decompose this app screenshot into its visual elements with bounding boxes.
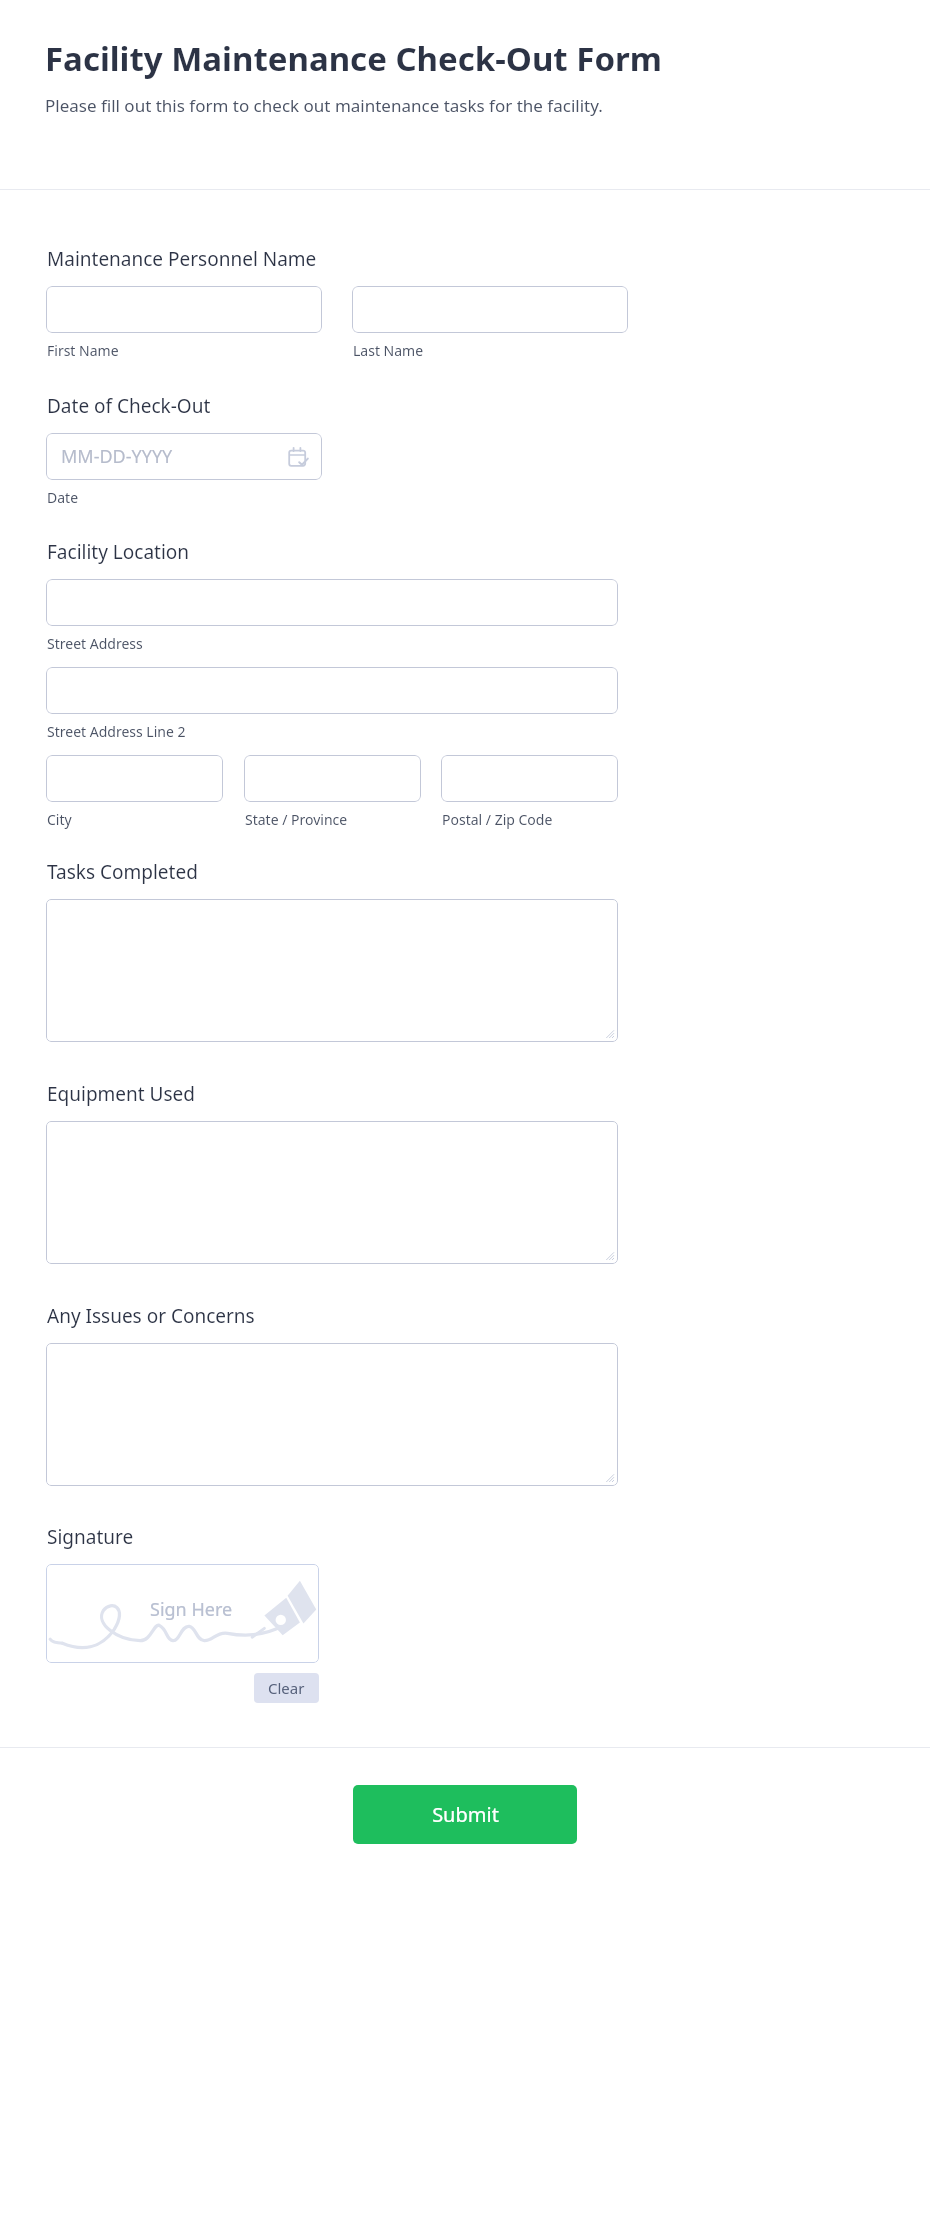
button[interactable] — [46, 286, 322, 333]
staticText: Please fill out this form to check out m… — [45, 94, 603, 117]
button[interactable] — [352, 286, 628, 333]
button[interactable] — [46, 579, 618, 626]
staticText: Facility Maintenance Check-Out Form — [45, 36, 662, 81]
staticText: Date of Check-Out — [47, 393, 211, 419]
staticText: Maintenance Personnel Name — [47, 246, 317, 272]
staticText: Street Address Line 2 — [47, 722, 186, 741]
button[interactable]: Clear — [254, 1673, 319, 1703]
staticText: Equipment Used — [47, 1081, 195, 1107]
button[interactable]: MM-DD-YYYY — [46, 433, 322, 480]
button[interactable] — [46, 1121, 618, 1264]
staticText: Facility Location — [47, 539, 190, 565]
button[interactable]: Sign Here signature pad — [46, 1564, 319, 1663]
button[interactable] — [244, 755, 421, 802]
staticText: Tasks Completed — [47, 859, 198, 885]
staticText: Signature — [47, 1524, 134, 1550]
button[interactable] — [46, 755, 223, 802]
button[interactable] — [46, 1343, 618, 1486]
staticText: Postal / Zip Code — [442, 810, 553, 829]
staticText: Street Address — [47, 634, 143, 653]
staticText: City — [47, 810, 72, 829]
button[interactable] — [441, 755, 618, 802]
staticText: Last Name — [353, 341, 424, 360]
staticText: Submit — [432, 1801, 499, 1828]
staticText: Date — [47, 488, 79, 507]
button[interactable] — [46, 899, 618, 1042]
button[interactable]: Submit — [353, 1785, 577, 1844]
button[interactable] — [46, 667, 618, 714]
staticText: State / Province — [245, 810, 348, 829]
staticText: MM-DD-YYYY — [61, 444, 173, 469]
staticText: Clear — [268, 1678, 305, 1698]
staticText: Sign Here — [150, 1597, 233, 1622]
staticText: First Name — [47, 341, 119, 360]
staticText: Any Issues or Concerns — [47, 1303, 255, 1329]
